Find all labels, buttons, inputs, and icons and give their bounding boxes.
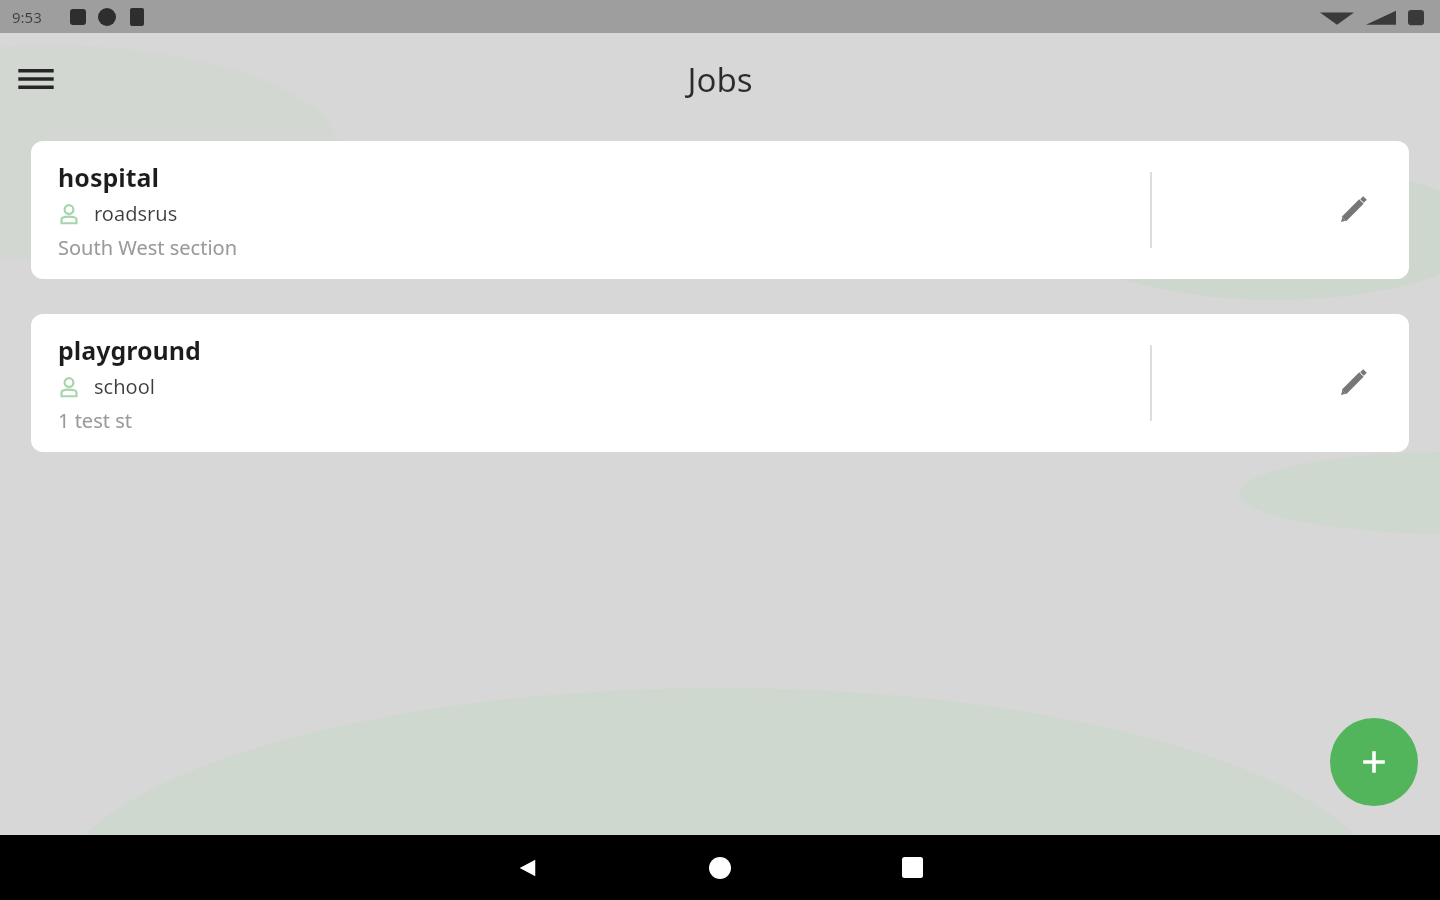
button[interactable]: Back: [432, 835, 624, 900]
button[interactable]: playground: [31, 314, 1409, 452]
staticText: roadsrus: [94, 200, 178, 227]
button[interactable]: hospital: [31, 141, 1409, 279]
button[interactable]: Add job: [1330, 718, 1418, 806]
staticText: school: [94, 373, 155, 400]
staticText: 1 test st: [58, 407, 132, 434]
staticText: hospital: [58, 160, 159, 194]
staticText: South West section: [58, 234, 237, 261]
button[interactable]: Open navigation menu: [10, 53, 62, 105]
button[interactable]: Edit: [1325, 182, 1381, 238]
button[interactable]: Home: [624, 835, 816, 900]
staticText: playground: [58, 333, 201, 367]
button[interactable]: Recent apps: [816, 835, 1008, 900]
staticText: Jobs: [687, 57, 753, 102]
staticText: 9:53: [12, 7, 42, 27]
button[interactable]: Edit: [1325, 355, 1381, 411]
